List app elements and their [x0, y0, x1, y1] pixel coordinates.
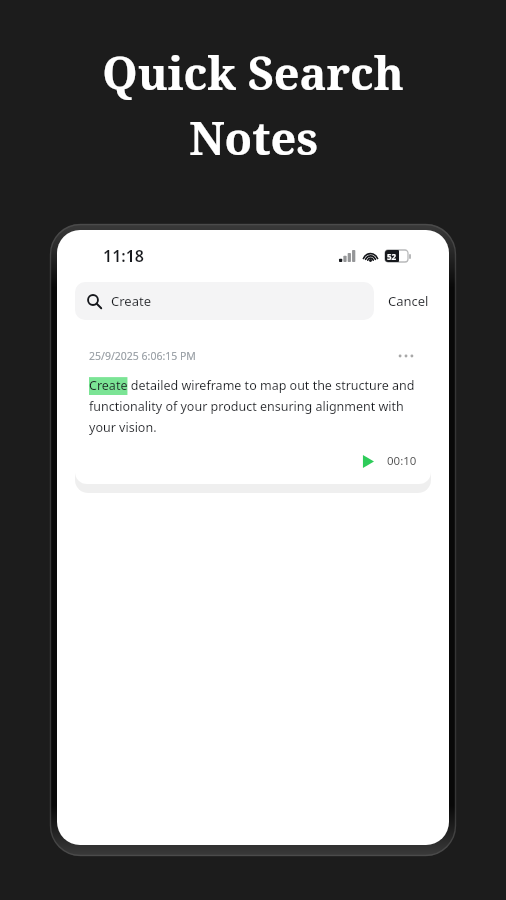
- staticText: Notes: [189, 107, 318, 168]
- staticText: Create: [111, 292, 151, 310]
- button[interactable]: 25/9/2025 6:06:15 PM: [75, 331, 431, 484]
- staticText: 25/9/2025 6:06:15 PM: [89, 349, 196, 363]
- button[interactable]: Cancel: [374, 284, 431, 318]
- staticText: Quick Search: [102, 42, 404, 103]
- staticText: Create detailed wireframe to map out the…: [89, 377, 417, 436]
- staticText: 00:10: [387, 453, 417, 469]
- staticText: 11:18: [103, 245, 145, 267]
- staticText: Cancel: [388, 292, 429, 310]
- button[interactable]: Create: [75, 282, 374, 320]
- staticText: 52: [387, 251, 397, 262]
- button[interactable]: Play recording: [357, 450, 379, 472]
- button[interactable]: More options: [395, 345, 417, 367]
